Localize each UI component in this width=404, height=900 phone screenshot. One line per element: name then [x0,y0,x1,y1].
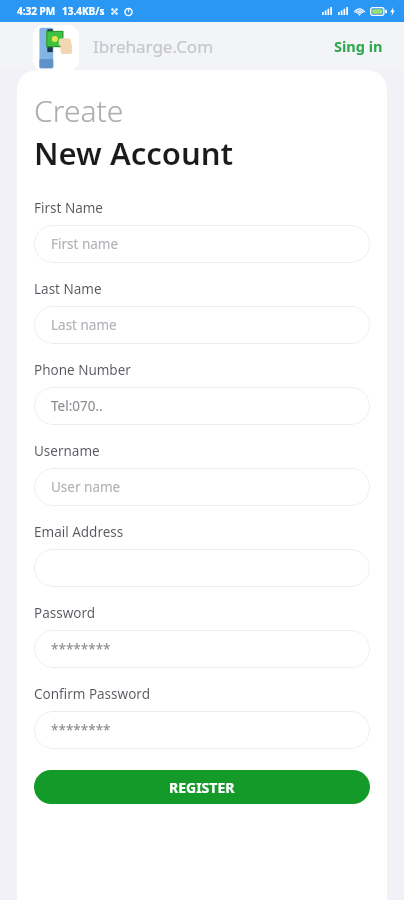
staticText: Ibreharge.Com [93,35,214,58]
button[interactable]: Last name [34,306,370,344]
staticText: First name [51,235,119,253]
staticText: Phone Number [34,361,131,379]
button[interactable]: REGISTER [34,770,370,804]
staticText: Last name [51,316,117,334]
staticText: Email Address [34,523,124,541]
staticText: Username [34,442,100,460]
staticText: User name [51,478,121,496]
button[interactable]: User name [34,468,370,506]
staticText: REGISTER [169,778,235,797]
staticText: ******** [51,640,111,658]
button[interactable]: ******** [34,711,370,749]
staticText: First Name [34,199,103,217]
staticText: ******** [51,721,111,739]
staticText: Sing in [334,36,383,56]
button[interactable]: First name [34,225,370,263]
staticText: 13.4KB/s [62,4,105,18]
button[interactable]: Tel:070.. [34,387,370,425]
staticText: Last Name [34,280,102,298]
staticText: Tel:070.. [51,397,103,415]
staticText: Password [34,604,96,622]
button[interactable]: ******** [34,630,370,668]
other: Ibrecharge logo [33,25,79,71]
staticText: 4:32 PM [17,4,56,18]
button[interactable] [34,549,370,587]
staticText: Create [34,90,124,131]
staticText: Confirm Password [34,685,150,703]
staticText: New Account [34,132,234,174]
button[interactable]: Sing in [330,32,387,60]
